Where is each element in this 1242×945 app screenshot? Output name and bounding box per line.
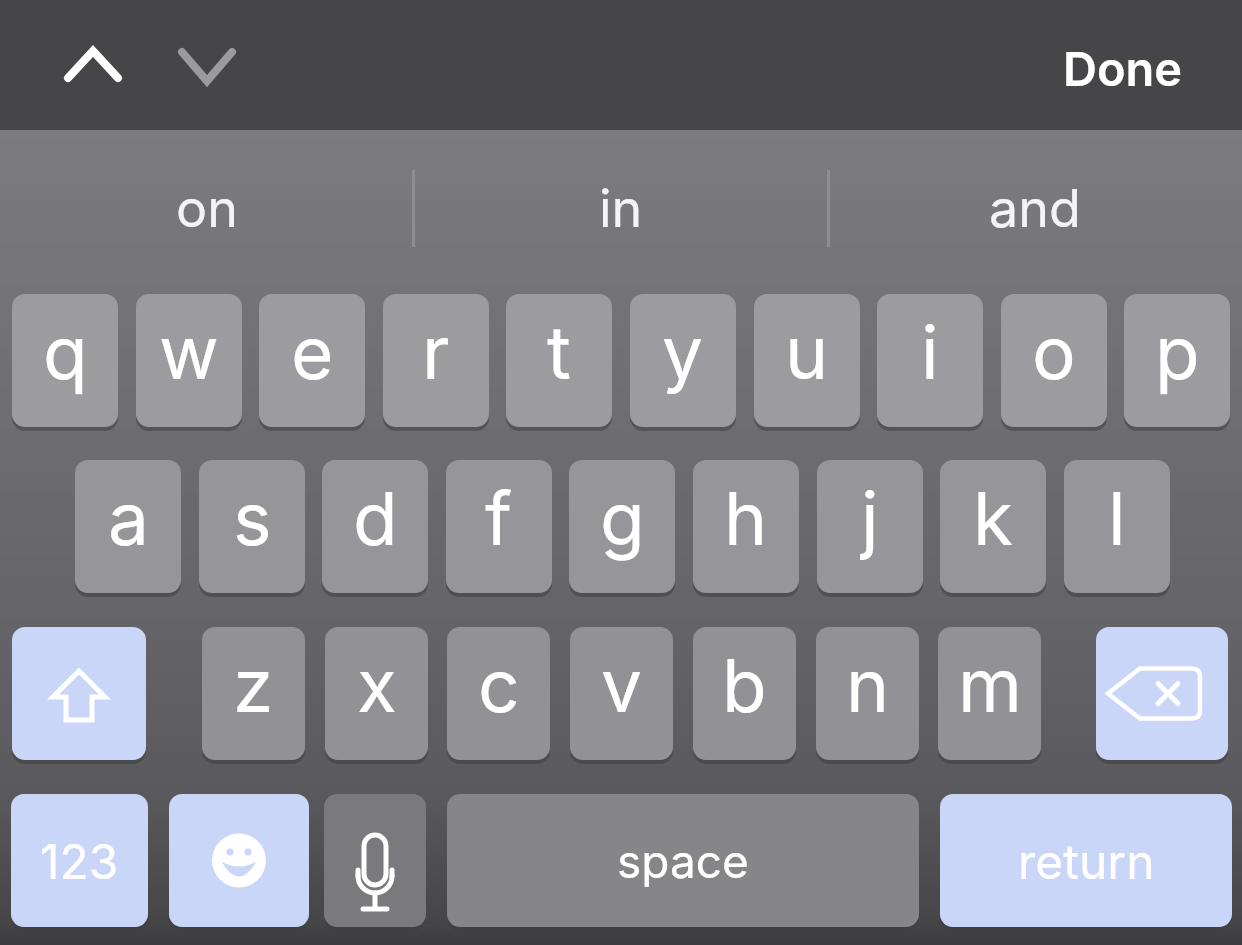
- button[interactable]: i: [877, 294, 983, 427]
- button[interactable]: t: [506, 294, 612, 427]
- button[interactable]: x: [325, 627, 428, 760]
- button[interactable]: l: [1064, 460, 1170, 593]
- staticText: in: [599, 177, 643, 240]
- button[interactable]: o: [1001, 294, 1107, 427]
- staticText: c: [478, 641, 520, 729]
- button[interactable]: r: [383, 294, 489, 427]
- button[interactable]: [1096, 627, 1228, 760]
- button[interactable]: c: [447, 627, 550, 760]
- staticText: return: [1018, 832, 1155, 890]
- staticText: on: [176, 177, 238, 240]
- button[interactable]: z: [202, 627, 305, 760]
- staticText: z: [233, 641, 274, 729]
- button[interactable]: in: [414, 130, 828, 294]
- button[interactable]: g: [569, 460, 675, 593]
- button[interactable]: p: [1124, 294, 1230, 427]
- button[interactable]: y: [630, 294, 736, 427]
- staticText: 123: [40, 832, 119, 890]
- button[interactable]: 123: [11, 794, 148, 927]
- button[interactable]: w: [136, 294, 242, 427]
- staticText: k: [973, 474, 1014, 562]
- staticText: w: [159, 308, 219, 396]
- button[interactable]: b: [693, 627, 796, 760]
- button[interactable]: q: [12, 294, 118, 427]
- staticText: g: [600, 474, 645, 562]
- button[interactable]: a: [75, 460, 181, 593]
- button[interactable]: space: [447, 794, 919, 927]
- button[interactable]: [48, 25, 138, 105]
- button[interactable]: s: [199, 460, 305, 593]
- staticText: b: [722, 641, 767, 729]
- staticText: m: [958, 641, 1022, 729]
- staticText: t: [547, 308, 571, 396]
- staticText: d: [353, 474, 398, 562]
- staticText: a: [108, 474, 149, 562]
- staticText: v: [601, 641, 643, 729]
- staticText: Done: [1063, 40, 1183, 97]
- staticText: x: [357, 641, 397, 729]
- staticText: s: [233, 474, 272, 562]
- staticText: q: [43, 308, 88, 396]
- staticText: and: [989, 177, 1081, 240]
- button[interactable]: and: [828, 130, 1242, 294]
- staticText: f: [485, 474, 513, 562]
- button[interactable]: h: [693, 460, 799, 593]
- button[interactable]: [12, 627, 146, 760]
- staticText: n: [846, 641, 890, 729]
- button[interactable]: j: [817, 460, 923, 593]
- staticText: y: [662, 308, 704, 396]
- staticText: space: [617, 833, 749, 889]
- button[interactable]: f: [446, 460, 552, 593]
- staticText: p: [1155, 308, 1200, 396]
- button[interactable]: Done: [1045, 38, 1195, 98]
- button[interactable]: m: [938, 627, 1041, 760]
- staticText: h: [724, 474, 768, 562]
- button[interactable]: [162, 25, 252, 105]
- staticText: e: [291, 308, 334, 396]
- button[interactable]: e: [259, 294, 365, 427]
- staticText: o: [1032, 308, 1076, 396]
- button[interactable]: n: [816, 627, 919, 760]
- button[interactable]: k: [940, 460, 1046, 593]
- button[interactable]: u: [754, 294, 860, 427]
- staticText: u: [785, 308, 829, 396]
- staticText: l: [1108, 474, 1126, 562]
- staticText: j: [861, 474, 879, 562]
- button[interactable]: on: [0, 130, 414, 294]
- staticText: r: [422, 308, 450, 396]
- button[interactable]: d: [322, 460, 428, 593]
- button[interactable]: v: [570, 627, 673, 760]
- button[interactable]: [169, 794, 309, 927]
- button[interactable]: [324, 794, 426, 927]
- button[interactable]: return: [940, 794, 1232, 927]
- staticText: i: [921, 308, 939, 396]
